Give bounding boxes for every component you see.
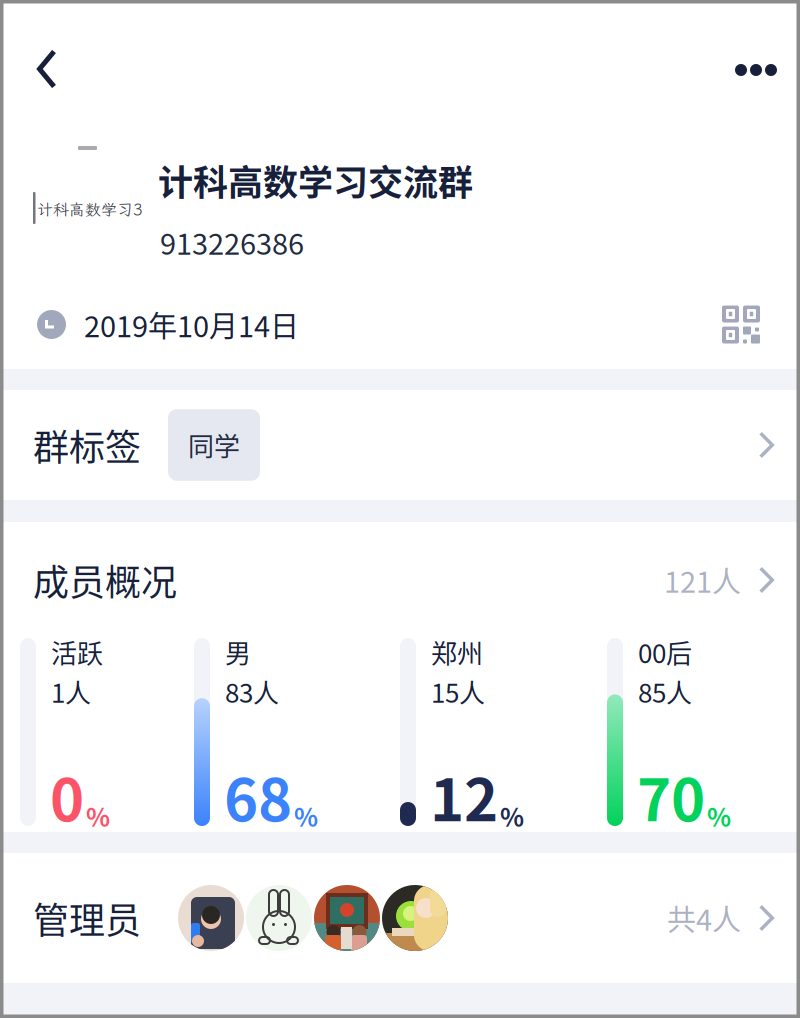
staticText: 同学 (188, 426, 240, 464)
staticText: 83人 (225, 673, 279, 710)
staticText: 成员概况 (33, 554, 177, 606)
staticText: % (294, 798, 318, 834)
staticText: 1人 (51, 673, 91, 710)
staticText: % (500, 798, 524, 834)
button[interactable]: Back (0, 3, 80, 115)
staticText: 2019年10月14日 (84, 303, 299, 345)
staticText: 郑州 (431, 633, 483, 671)
staticText: 85人 (638, 673, 692, 710)
staticText: 计科高数学习交流群 (158, 155, 473, 206)
staticText: 00后 (638, 633, 692, 671)
button[interactable]: 成员概况 (0, 522, 800, 638)
staticText: % (707, 798, 731, 834)
staticText: 管理员 (33, 892, 141, 944)
staticText: % (86, 798, 110, 834)
staticText: 70 (637, 754, 705, 838)
button[interactable]: 群标签 (0, 390, 800, 500)
staticText: 共4人 (667, 897, 741, 939)
staticText: 活跃 (51, 633, 103, 671)
staticText: 计科高数学习3 (37, 199, 143, 220)
button[interactable]: 管理员 (0, 853, 800, 983)
staticText: 男 (225, 633, 251, 671)
staticText: 121人 (664, 559, 741, 601)
button[interactable]: More (713, 2, 800, 116)
staticText: 68 (224, 754, 292, 838)
staticText: 群标签 (33, 419, 141, 471)
staticText: 12 (430, 754, 498, 838)
staticText: 0 (50, 754, 84, 838)
staticText: 913226386 (160, 221, 304, 263)
staticText: 15人 (431, 673, 485, 710)
button[interactable]: Group QR code (700, 288, 800, 360)
